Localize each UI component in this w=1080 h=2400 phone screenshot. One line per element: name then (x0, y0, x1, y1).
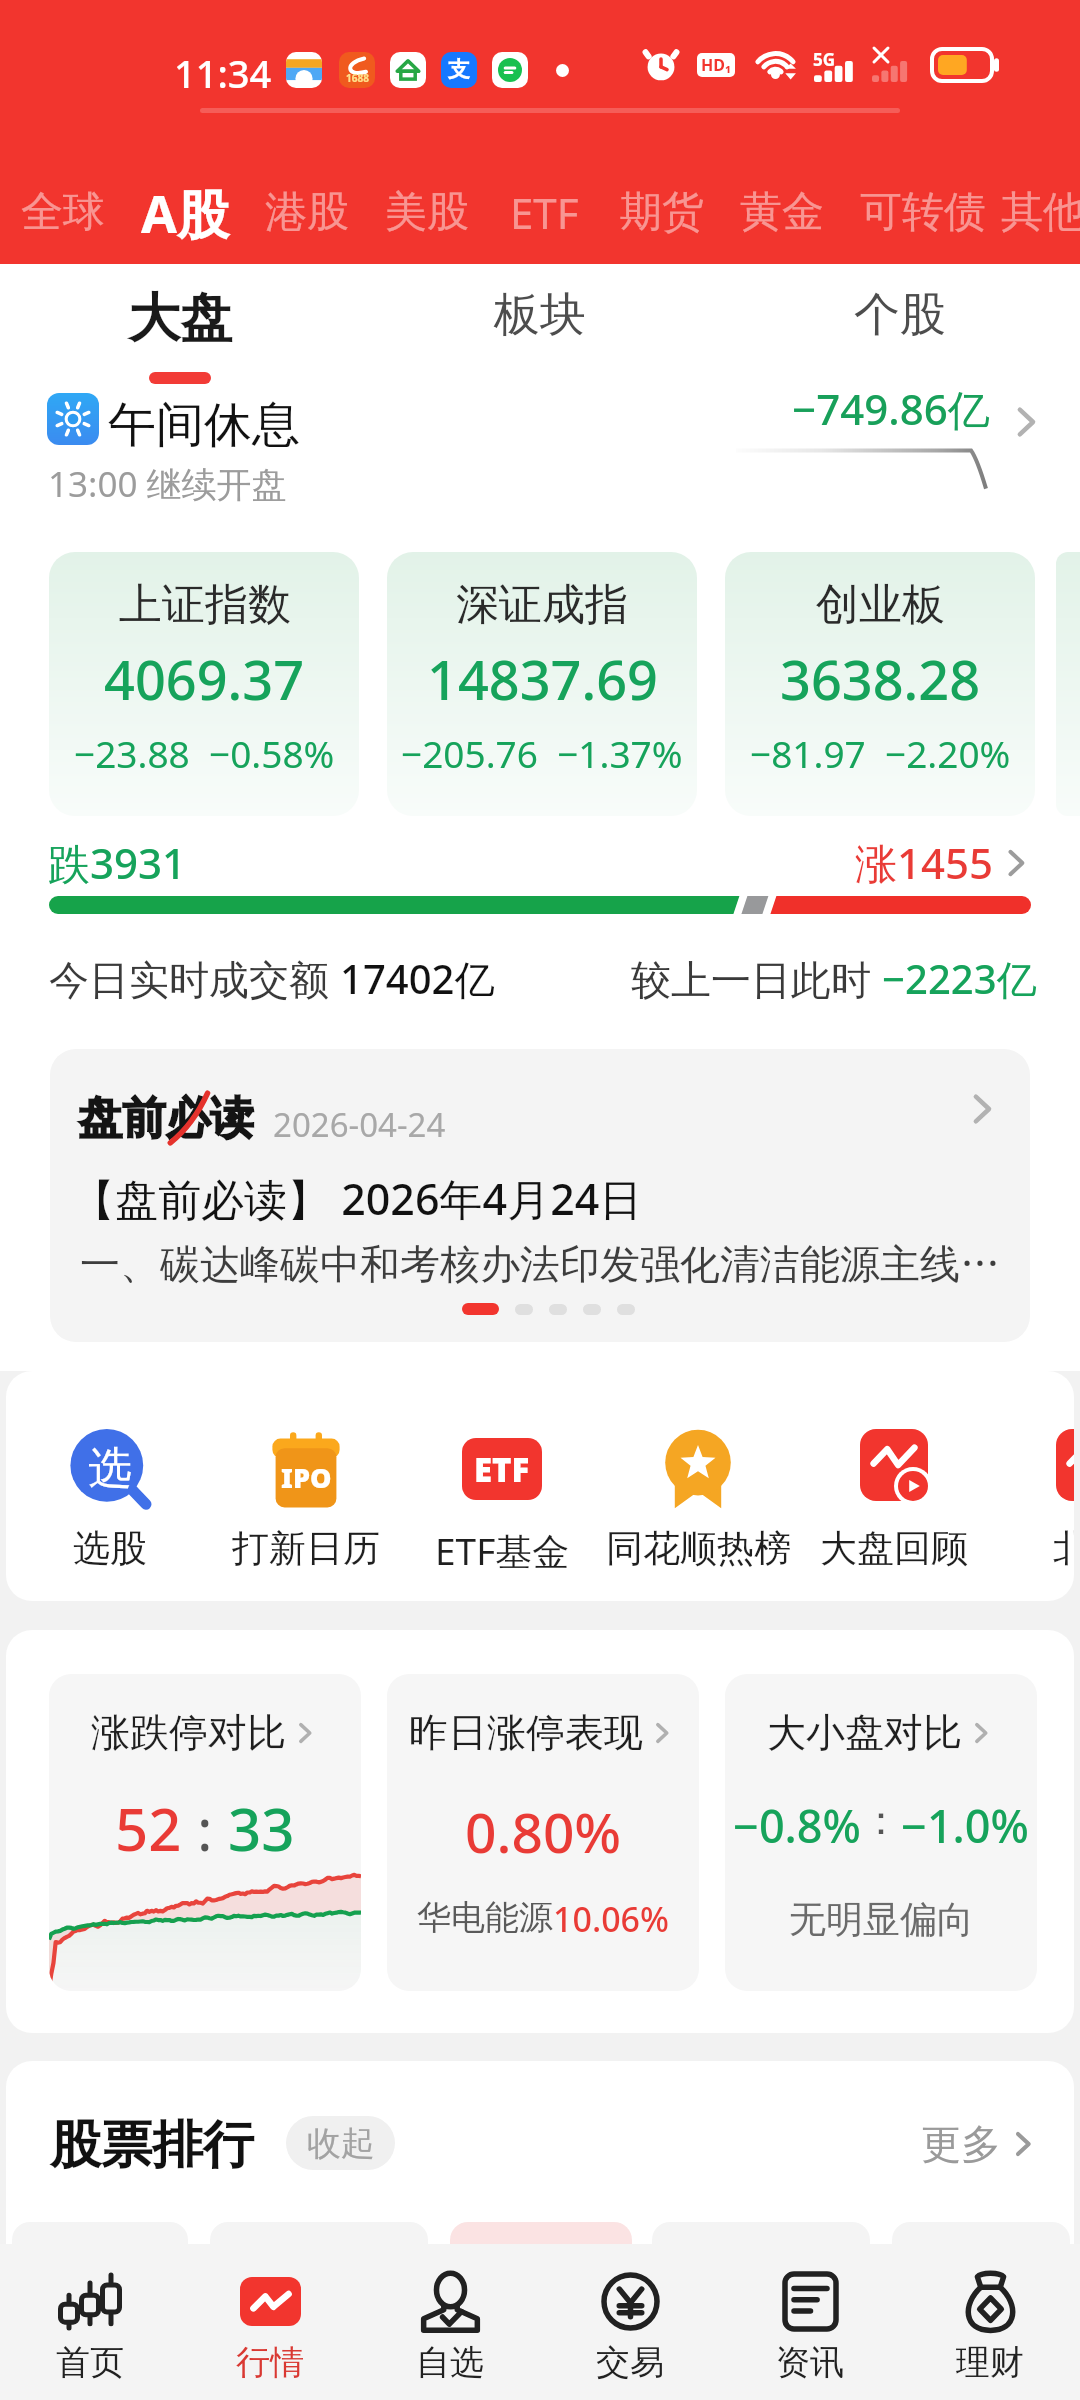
button[interactable]: IPO (208, 1371, 404, 1601)
staticText: 股票排行 (50, 2113, 254, 2177)
staticText: 无明显偏向 (789, 1896, 974, 1943)
staticText: 华电能源 (417, 1896, 553, 1939)
other: Markets (240, 2277, 301, 2326)
staticText: 33 (228, 1789, 295, 1868)
button[interactable]: 更多 (921, 2119, 1041, 2169)
button[interactable]: 美股 (367, 172, 487, 252)
staticText: 北交 (1053, 1525, 1074, 1572)
button[interactable]: 板块 (360, 264, 720, 384)
staticText: 港股 (265, 186, 349, 239)
other: Open article (960, 1087, 1004, 1131)
button[interactable]: 选 (12, 1371, 208, 1601)
staticText: 涨1455 (855, 834, 994, 891)
staticText: 盘前必读 (78, 1091, 254, 1146)
staticText: 同花顺热榜 (606, 1525, 791, 1572)
button[interactable]: 个股 (720, 264, 1080, 384)
staticText: 打新日历 (232, 1525, 380, 1572)
staticText: 11:34 (174, 47, 272, 99)
staticText: 大盘回顾 (820, 1525, 968, 1572)
staticText: 选股 (73, 1525, 147, 1572)
staticText: 2026-04-24 (273, 1102, 446, 1147)
button[interactable]: 大小盘对比 (725, 1674, 1037, 1991)
button[interactable]: 可转债 (842, 172, 1004, 252)
staticText: 交易 (596, 2341, 664, 2384)
staticText: 期货 (620, 186, 704, 239)
button[interactable]: 昨日涨停表现 (387, 1674, 699, 1991)
button[interactable]: Trade (540, 2244, 720, 2400)
button[interactable]: 全球 (3, 172, 123, 252)
other: Watchlist (420, 2272, 481, 2332)
button[interactable]: ETF (404, 1371, 600, 1601)
staticText: 14837.69 (427, 642, 658, 716)
button[interactable]: Markets (180, 2244, 360, 2400)
button[interactable]: 大盘回顾 (796, 1371, 992, 1601)
button[interactable]: 同花顺热榜 (600, 1371, 796, 1601)
staticText: ETF (510, 184, 579, 241)
staticText: 自选 (416, 2341, 484, 2384)
button[interactable] (892, 2222, 1070, 2322)
staticText: ETF (474, 1447, 530, 1492)
button[interactable]: 创业板 (725, 552, 1035, 816)
button[interactable]: Finance (900, 2244, 1080, 2400)
staticText: 13:00 继续开盘 (48, 460, 287, 508)
button[interactable]: 涨跌停对比 (49, 1674, 361, 1991)
staticText: 大盘 (128, 286, 232, 352)
staticText: 跌3931 (48, 834, 187, 891)
staticText: 可转债 (860, 186, 986, 239)
staticText: 大小盘对比 (767, 1708, 962, 1757)
staticText: 更多 (921, 2119, 1001, 2169)
button[interactable]: Home (0, 2244, 180, 2400)
button[interactable]: 收起 (286, 2116, 395, 2170)
button[interactable]: 跌3931 (48, 834, 1036, 891)
button[interactable]: 期货 (602, 172, 722, 252)
staticText: 黄金 (740, 186, 824, 239)
staticText: 5G (813, 48, 836, 71)
staticText: 10.06% (553, 1896, 670, 1942)
staticText: IPO (281, 1459, 332, 1496)
staticText: : (182, 1789, 228, 1868)
button[interactable]: 黄金 (722, 172, 842, 252)
button[interactable]: A股 (123, 172, 247, 252)
staticText: 资讯 (776, 2341, 844, 2384)
staticText: 4069.37 (104, 642, 305, 716)
button[interactable] (12, 2222, 188, 2322)
staticText: A股 (141, 177, 229, 248)
other: Home (62, 2275, 118, 2328)
staticText: 1688 (346, 71, 369, 85)
staticText: 较上一日此时 (631, 951, 882, 1006)
staticText: 17402亿 (340, 951, 495, 1006)
button[interactable]: Watchlist (360, 2244, 540, 2400)
other: Market detail (1004, 400, 1048, 444)
staticText: 0.80% (465, 1794, 622, 1869)
button[interactable]: 午间休息 (0, 380, 1080, 510)
other: News (783, 2272, 838, 2331)
other: Finance (962, 2272, 1019, 2331)
button[interactable]: ETF (487, 172, 602, 252)
button[interactable]: 上证指数 (49, 552, 359, 816)
staticText: 个股 (854, 286, 946, 344)
button[interactable]: 盘前必读 (50, 1049, 1030, 1342)
button[interactable] (210, 2222, 428, 2322)
button[interactable]: 深证成指 (387, 552, 697, 816)
button[interactable] (652, 2222, 870, 2322)
staticText: 板块 (494, 286, 586, 344)
staticText: 全球 (21, 186, 105, 239)
button[interactable]: 北交 (992, 1371, 1074, 1601)
staticText: 今日实时成交额 (49, 951, 340, 1006)
staticText: 午间休息 (108, 395, 300, 455)
button[interactable]: 其他 (1001, 172, 1080, 252)
staticText: 创业板 (816, 578, 945, 632)
button[interactable] (450, 2222, 632, 2322)
button[interactable]: 大盘 (0, 264, 360, 384)
staticText: 理财 (956, 2341, 1024, 2384)
other: Trade (601, 2272, 660, 2331)
staticText: 收起 (307, 2122, 375, 2165)
staticText: 深证成指 (456, 578, 628, 632)
staticText: 支 (448, 56, 470, 84)
button[interactable]: News (720, 2244, 900, 2400)
button[interactable]: 港股 (247, 172, 367, 252)
staticText: 其他 (1001, 186, 1080, 239)
staticText: 涨跌停对比 (91, 1708, 286, 1757)
staticText: 行情 (236, 2341, 304, 2384)
staticText: 上证指数 (119, 578, 291, 632)
